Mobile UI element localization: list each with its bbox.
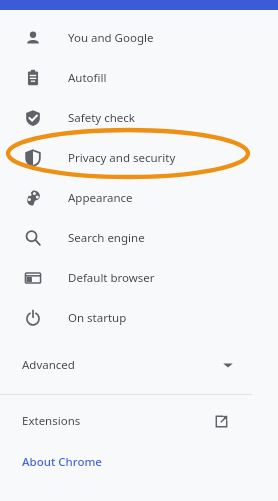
- button[interactable]: Autofill: [0, 58, 278, 98]
- button[interactable]: Advanced: [0, 345, 278, 385]
- staticText: Privacy and security: [68, 150, 176, 166]
- button[interactable]: Appearance: [0, 178, 278, 218]
- button[interactable]: Extensions: [0, 401, 278, 441]
- other: Open Extensions in a new tab: [215, 415, 228, 428]
- button[interactable]: You and Google: [0, 18, 278, 58]
- staticText: Default browser: [68, 270, 155, 286]
- staticText: On startup: [68, 310, 127, 326]
- button[interactable]: Default browser: [0, 258, 278, 298]
- button[interactable]: Safety check: [0, 98, 278, 138]
- button[interactable]: On startup: [0, 298, 278, 338]
- other: Expand advanced settings: [221, 358, 235, 372]
- staticText: Safety check: [68, 110, 135, 126]
- button[interactable]: Privacy and security: [0, 138, 278, 178]
- staticText: Search engine: [68, 230, 145, 246]
- staticText: Autofill: [68, 70, 107, 86]
- staticText: About Chrome: [22, 454, 102, 470]
- staticText: Advanced: [22, 357, 75, 373]
- button[interactable]: Search engine: [0, 218, 278, 258]
- button[interactable]: About Chrome: [0, 445, 278, 479]
- staticText: You and Google: [68, 30, 154, 46]
- staticText: Appearance: [68, 190, 133, 206]
- staticText: Extensions: [22, 413, 81, 429]
